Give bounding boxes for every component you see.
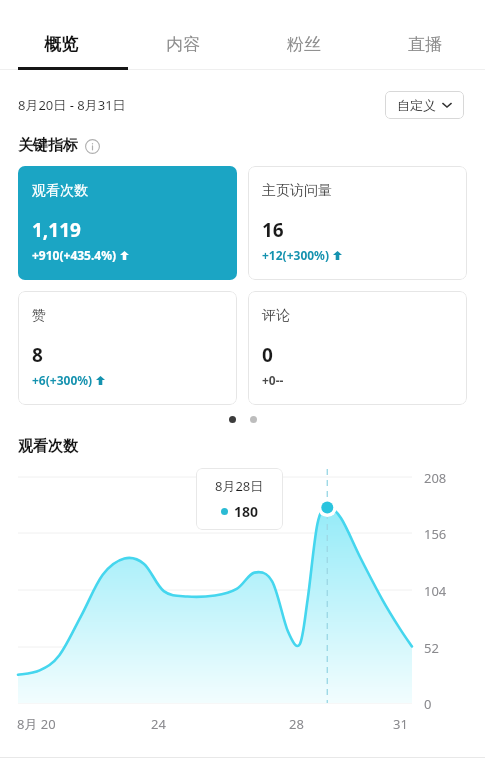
staticText: 0	[262, 342, 273, 368]
staticText: +6(+300%)	[32, 372, 93, 388]
staticText: 0	[424, 695, 432, 713]
staticText: 180	[234, 502, 259, 521]
staticText: 24	[151, 715, 166, 733]
staticText: 8月20日 - 8月31日	[18, 96, 126, 114]
staticText: 52	[424, 639, 439, 657]
button[interactable]: Page 1	[229, 416, 236, 423]
button[interactable]: 观看次数	[18, 166, 237, 280]
button[interactable]: 评论	[248, 291, 467, 405]
staticText: 内容	[166, 34, 200, 55]
staticText: 粉丝	[287, 34, 321, 55]
staticText: 关键指标	[18, 136, 78, 155]
staticText: 1,119	[32, 217, 81, 243]
staticText: 28	[289, 715, 304, 733]
staticText: 208	[424, 469, 447, 487]
button[interactable]: 主页访问量	[248, 166, 467, 280]
staticText: 31	[393, 715, 408, 733]
button[interactable]: 直播	[364, 18, 485, 70]
staticText: 赞	[32, 307, 46, 325]
button[interactable]: Info	[84, 138, 100, 154]
staticText: 观看次数	[32, 182, 88, 200]
staticText: 8月 20	[17, 715, 56, 733]
staticText: 8	[32, 342, 43, 368]
button[interactable]: 自定义	[385, 91, 464, 119]
staticText: 104	[424, 582, 447, 600]
staticText: 概览	[44, 34, 78, 55]
staticText: 主页访问量	[262, 182, 332, 200]
button[interactable]: 内容	[122, 18, 243, 70]
staticText: +12(+300%)	[262, 247, 330, 263]
staticText: 8月28日	[215, 477, 264, 495]
staticText: 直播	[408, 34, 442, 55]
staticText: +0--	[262, 372, 284, 388]
staticText: 16	[262, 217, 284, 243]
button[interactable]: 赞	[18, 291, 237, 405]
button[interactable]: 概览	[0, 18, 122, 70]
staticText: +910(+435.4%)	[32, 247, 117, 263]
staticText: 自定义	[397, 97, 436, 113]
button[interactable]: Page 2	[250, 416, 257, 423]
staticText: 评论	[262, 307, 290, 325]
staticText: 156	[424, 525, 447, 543]
button[interactable]: 粉丝	[243, 18, 364, 70]
staticText: 观看次数	[18, 437, 78, 456]
